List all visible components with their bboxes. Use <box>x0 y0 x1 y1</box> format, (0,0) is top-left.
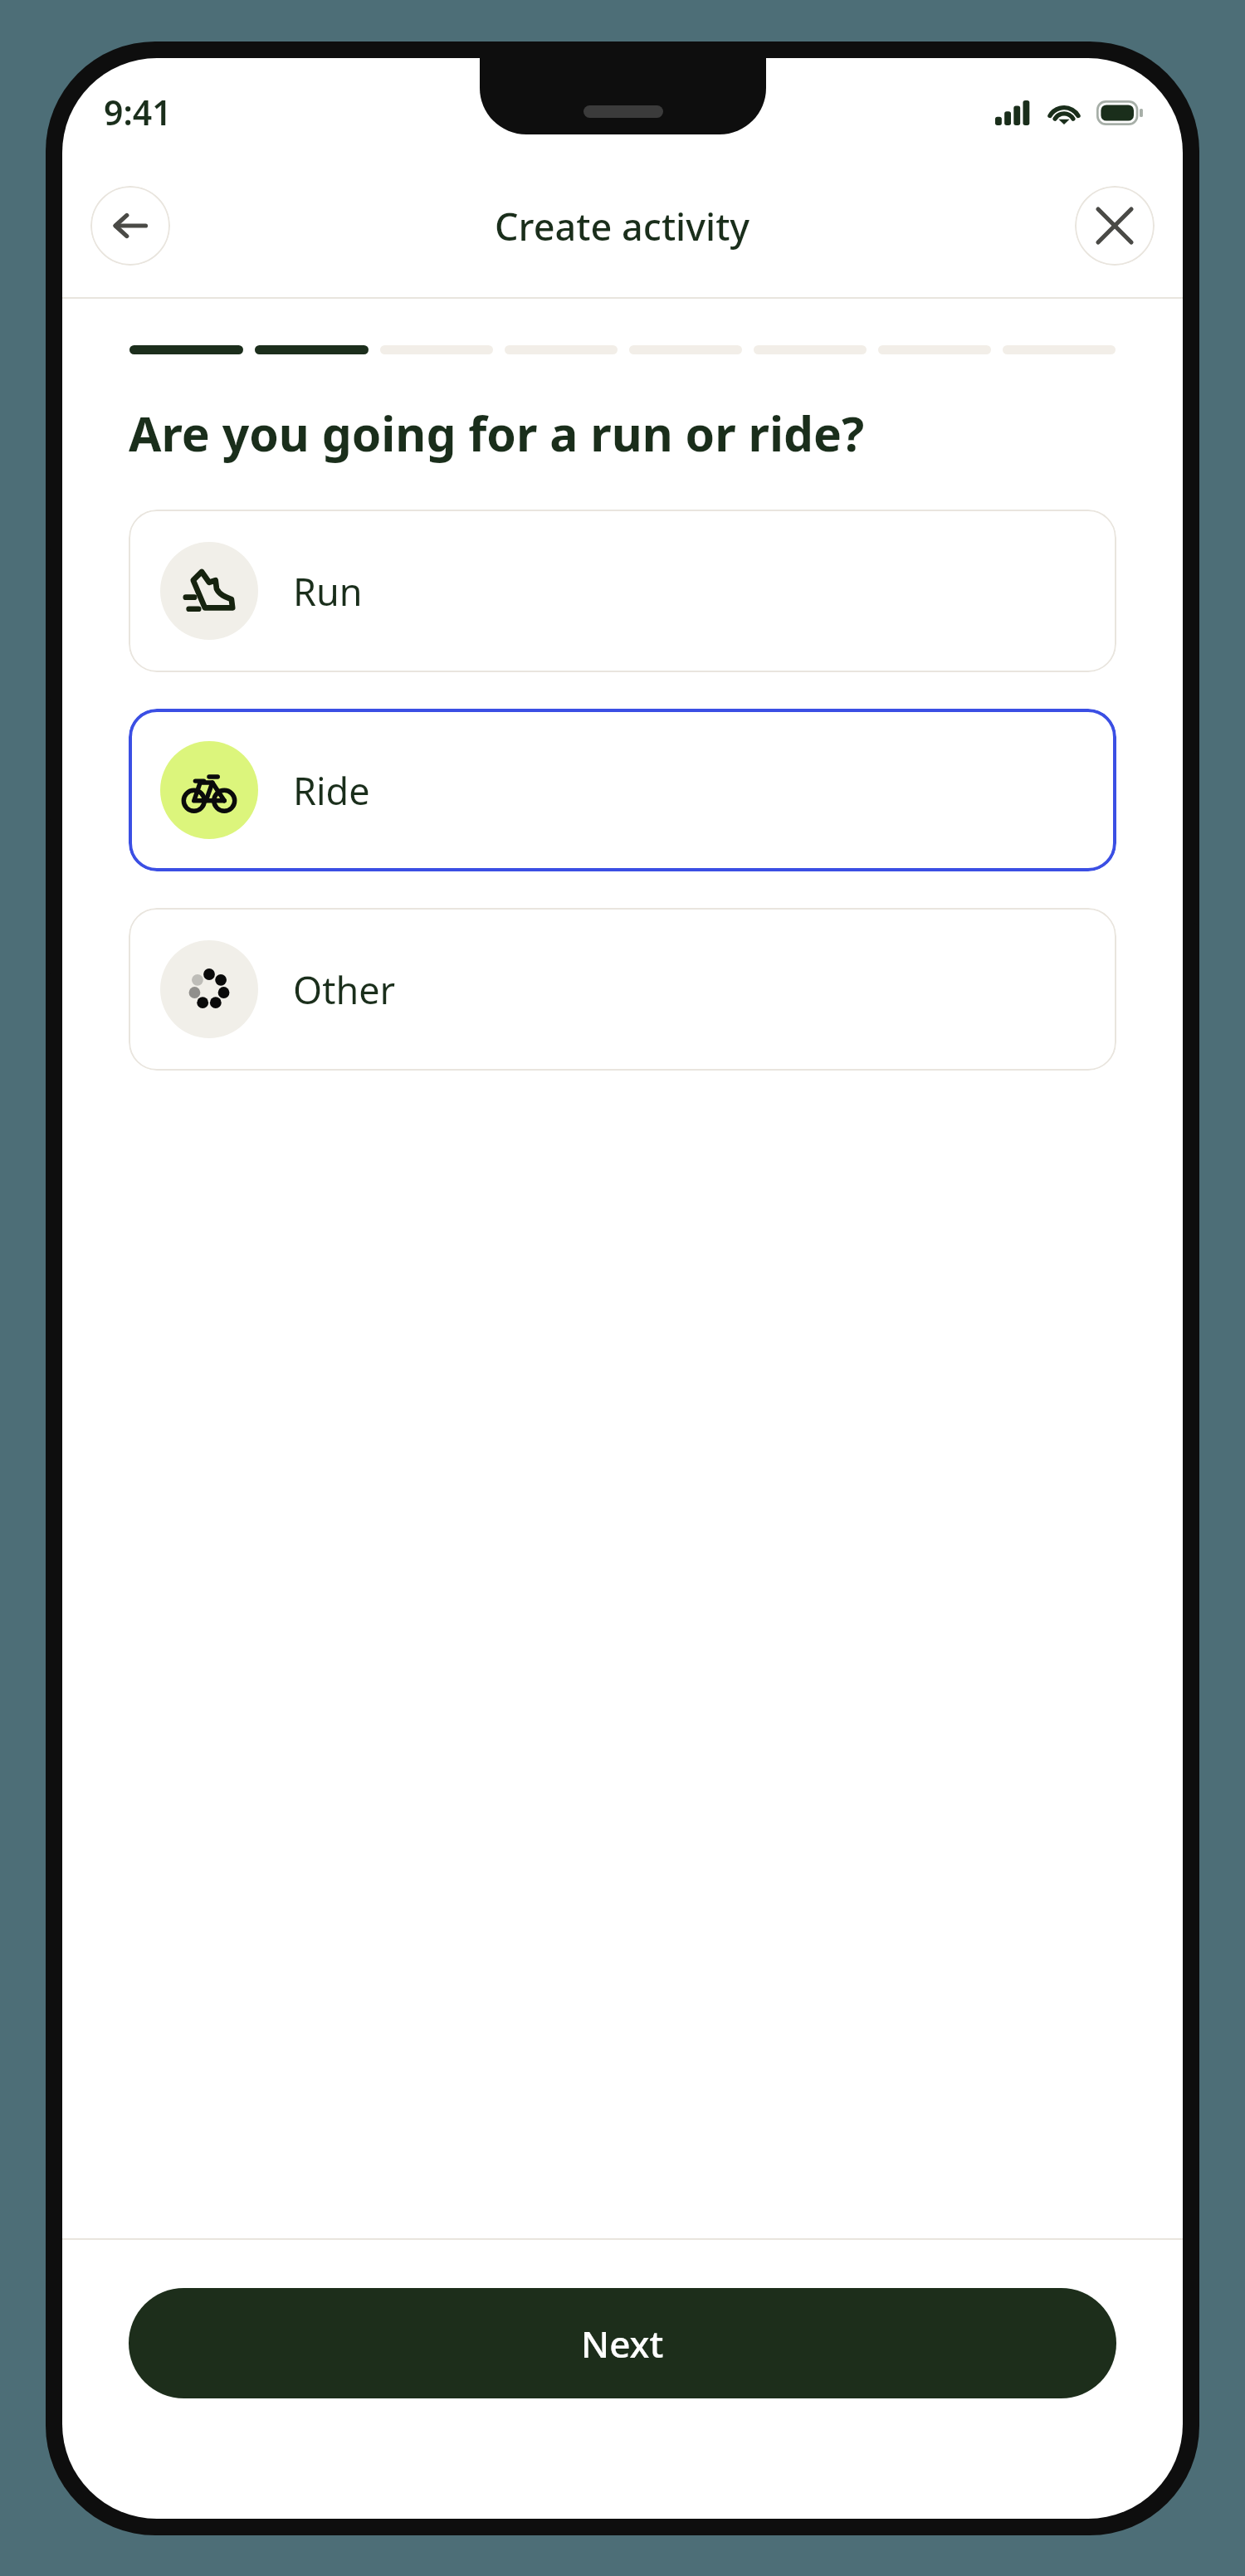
button[interactable]: Back <box>90 186 170 266</box>
staticText: Other <box>293 964 396 1015</box>
button[interactable]: Other <box>129 908 1116 1071</box>
button[interactable]: Next <box>129 2288 1116 2398</box>
staticText: Ride <box>293 765 370 816</box>
staticText: Run <box>293 566 363 617</box>
button[interactable]: Ride <box>129 709 1116 871</box>
staticText: Next <box>581 2319 664 2369</box>
staticText: Create activity <box>495 201 750 251</box>
button[interactable]: Run <box>129 510 1116 672</box>
staticText: 9:41 <box>104 89 172 135</box>
staticText: Are you going for a run or ride? <box>129 401 865 466</box>
button[interactable]: Close <box>1075 186 1155 266</box>
